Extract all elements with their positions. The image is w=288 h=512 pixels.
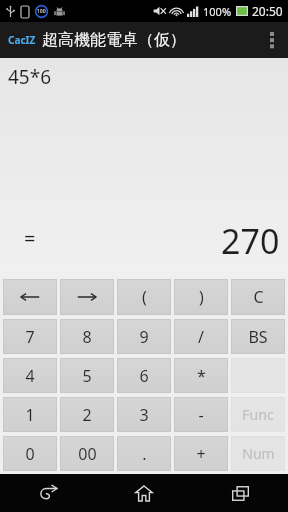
staticText: 3 bbox=[139, 404, 149, 426]
staticText: Num bbox=[242, 444, 275, 463]
staticText: ( bbox=[142, 286, 147, 308]
staticText: 2 bbox=[82, 404, 92, 426]
button[interactable]: Recent apps bbox=[192, 474, 288, 512]
staticText: Func bbox=[242, 405, 274, 424]
staticText: + bbox=[196, 443, 206, 465]
button[interactable]: 00 bbox=[60, 436, 114, 471]
staticText: 7 bbox=[25, 326, 35, 348]
button[interactable]: * bbox=[174, 358, 228, 393]
staticText: 超高機能電卓（仮） bbox=[42, 30, 186, 50]
staticText: 100 bbox=[37, 8, 46, 15]
button[interactable]: . bbox=[117, 436, 171, 471]
staticText: 1 bbox=[25, 404, 35, 426]
button[interactable]: ) bbox=[174, 279, 228, 315]
staticText: - bbox=[198, 404, 204, 426]
button[interactable]: Back bbox=[0, 474, 96, 512]
staticText: 20:50 bbox=[252, 3, 283, 19]
button[interactable]: - bbox=[174, 397, 228, 432]
button[interactable]: 1 bbox=[3, 397, 57, 432]
button[interactable]: 6 bbox=[117, 358, 171, 393]
staticText: * bbox=[197, 365, 206, 387]
button[interactable]: Func bbox=[231, 397, 285, 432]
staticText: . bbox=[142, 443, 147, 465]
button[interactable]: ( bbox=[117, 279, 171, 315]
staticText: 8 bbox=[82, 326, 92, 348]
staticText: = bbox=[24, 225, 36, 252]
button[interactable]: 4 bbox=[3, 358, 57, 393]
button[interactable]: + bbox=[174, 436, 228, 471]
staticText: 5 bbox=[82, 365, 92, 387]
button[interactable]: / bbox=[174, 319, 228, 354]
button[interactable]: 7 bbox=[3, 319, 57, 354]
button[interactable]: Num bbox=[231, 436, 285, 471]
staticText: 100% bbox=[203, 4, 232, 19]
staticText: 45*6 bbox=[8, 64, 52, 90]
button[interactable]: Home bbox=[96, 474, 192, 512]
staticText: 6 bbox=[139, 365, 149, 387]
staticText: 270 bbox=[221, 218, 280, 264]
button[interactable]: 5 bbox=[60, 358, 114, 393]
staticText: BS bbox=[248, 326, 268, 348]
button[interactable]: C bbox=[231, 279, 285, 315]
button[interactable]: 2 bbox=[60, 397, 114, 432]
staticText: CacIZ bbox=[8, 33, 36, 47]
staticText: C bbox=[253, 286, 264, 308]
button[interactable]: 3 bbox=[117, 397, 171, 432]
button[interactable]: Move left bbox=[3, 279, 57, 315]
staticText: ) bbox=[199, 286, 204, 308]
button[interactable]: 9 bbox=[117, 319, 171, 354]
staticText: 00 bbox=[78, 443, 97, 465]
button[interactable]: More options bbox=[256, 22, 288, 58]
button[interactable]: Move right bbox=[60, 279, 114, 315]
button[interactable]: 0 bbox=[3, 436, 57, 471]
staticText: 0 bbox=[25, 443, 35, 465]
staticText: 9 bbox=[139, 326, 149, 348]
button[interactable]: 8 bbox=[60, 319, 114, 354]
button[interactable]: BS bbox=[231, 319, 285, 354]
staticText: 4 bbox=[25, 365, 35, 387]
staticText: / bbox=[198, 326, 204, 348]
